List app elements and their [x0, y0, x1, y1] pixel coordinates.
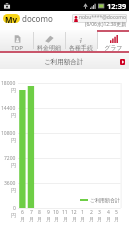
staticText: 月	[97, 216, 102, 222]
staticText: 円	[11, 87, 16, 93]
staticText: ご利用額合計	[44, 58, 84, 66]
staticText: docomo	[22, 13, 53, 24]
staticText: 14400	[1, 105, 16, 112]
button[interactable]: TOP	[0, 30, 33, 53]
staticText: グラフ	[104, 44, 123, 52]
staticText: 1	[81, 209, 84, 216]
staticText: 4	[107, 209, 110, 216]
staticText: 12	[71, 209, 77, 216]
staticText: 0	[13, 205, 16, 212]
staticText: ご利用額合計	[90, 197, 121, 203]
staticText: 月	[20, 216, 25, 222]
staticText: 円	[11, 212, 16, 218]
staticText: 月	[72, 216, 77, 222]
staticText: 9	[47, 209, 50, 216]
staticText: 各種手続	[69, 44, 93, 52]
staticText: 月	[89, 216, 94, 222]
staticText: 12:39	[107, 1, 127, 11]
staticText: 月	[63, 216, 68, 222]
staticText: 円	[11, 112, 16, 118]
button[interactable]: 料金明細	[33, 30, 65, 53]
staticText: nobu****@docomo.ne.jp	[79, 14, 127, 23]
staticText: 7	[30, 209, 33, 216]
staticText: 6	[21, 209, 24, 216]
staticText: 円	[11, 187, 16, 193]
staticText: 3	[98, 209, 101, 216]
staticText: 11	[62, 209, 68, 216]
staticText: 月	[37, 216, 42, 222]
button[interactable]: nobu****@docomo.ne.jp	[72, 14, 127, 23]
staticText: 月	[46, 216, 51, 222]
staticText: i	[79, 35, 83, 43]
button[interactable]: 詳細を見る	[120, 59, 125, 65]
staticText: 月	[54, 216, 59, 222]
staticText: 2	[90, 209, 93, 216]
staticText: 10800	[1, 130, 16, 137]
staticText: 月	[114, 216, 119, 222]
staticText: My	[5, 14, 18, 23]
staticText: 10	[53, 209, 59, 216]
staticText: 18000	[1, 80, 16, 87]
staticText: 5	[115, 209, 118, 216]
staticText: 月	[106, 216, 111, 222]
staticText: 3600	[4, 180, 16, 187]
staticText: 料金明細	[37, 44, 61, 52]
staticText: 8	[38, 209, 41, 216]
staticText: 7200	[4, 155, 16, 162]
staticText: 月	[80, 216, 85, 222]
button[interactable]: i	[65, 30, 97, 53]
staticText: 円	[11, 162, 16, 168]
staticText: (6/06水)12:38更新	[85, 21, 127, 28]
staticText: 月	[29, 216, 34, 222]
button[interactable]: グラフ	[97, 30, 129, 53]
staticText: 円	[11, 137, 16, 143]
staticText: TOP	[11, 44, 23, 52]
